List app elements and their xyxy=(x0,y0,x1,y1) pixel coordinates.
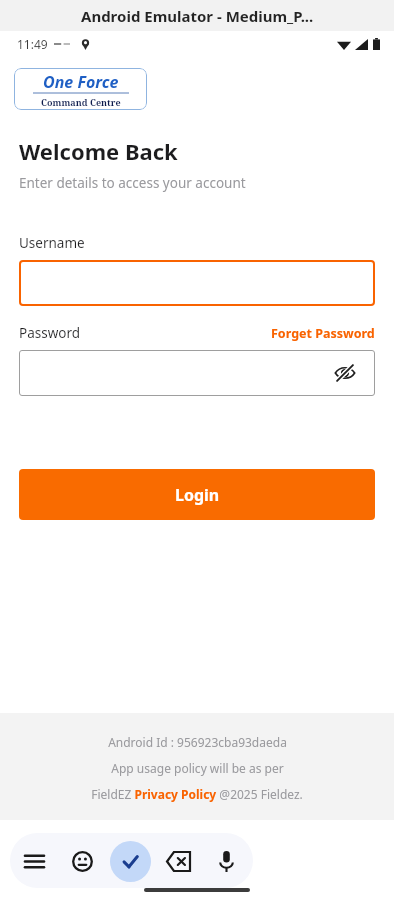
staticText: Password xyxy=(19,324,81,342)
button[interactable]: Voice input xyxy=(202,837,250,885)
staticText: Welcome Back xyxy=(19,136,178,166)
button[interactable]: Forget Password xyxy=(271,325,375,342)
staticText: FieldEZ Privacy Policy @2025 Fieldez. xyxy=(91,786,303,802)
staticText: Forget Password xyxy=(271,325,375,342)
button[interactable]: Menu xyxy=(10,837,58,885)
staticText: Android Id : 956923cba93daeda xyxy=(108,734,287,750)
button[interactable]: Login xyxy=(19,469,375,520)
staticText: Username xyxy=(19,234,85,252)
staticText: Android Emulator - Medium_P... xyxy=(81,6,314,26)
button[interactable]: Confirm xyxy=(106,837,154,885)
button[interactable]: Show password xyxy=(332,360,358,386)
staticText: Enter details to access your account xyxy=(19,174,246,192)
staticText: One Force xyxy=(43,71,119,93)
button[interactable] xyxy=(19,260,375,306)
staticText: Login xyxy=(175,484,220,506)
staticText: :2.2.12 xyxy=(177,844,218,862)
staticText: Command Centre xyxy=(41,96,121,108)
staticText: 11:49 xyxy=(17,36,48,52)
staticText: App usage policy will be as per xyxy=(111,760,284,776)
button[interactable]: Backspace xyxy=(154,837,202,885)
button[interactable]: Emoji xyxy=(58,837,106,885)
button[interactable]: Show password xyxy=(19,350,375,396)
